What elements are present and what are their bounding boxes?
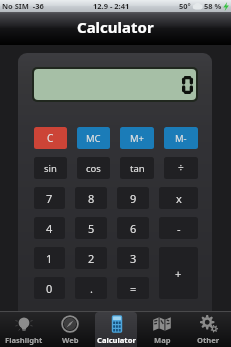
staticText: 12.9 - 2:41	[93, 1, 130, 11]
staticText: 1	[46, 251, 53, 266]
button[interactable]: 7	[34, 187, 65, 209]
staticText: Calculator	[97, 335, 136, 345]
staticText: M+	[130, 132, 145, 145]
staticText: 58 %	[204, 1, 222, 11]
button[interactable]: Calculator	[93, 312, 139, 347]
staticText: 3	[130, 251, 137, 266]
button[interactable]: 3	[117, 247, 149, 269]
staticText: 2	[88, 251, 95, 266]
button[interactable]: sin	[34, 157, 67, 179]
staticText: cos	[86, 162, 101, 175]
staticText: 4	[46, 221, 53, 236]
button[interactable]: tan	[120, 157, 154, 179]
staticText: No SIM -36	[2, 1, 44, 11]
staticText: =	[130, 281, 137, 296]
button[interactable]: M+	[120, 127, 154, 149]
button[interactable]: .	[75, 277, 107, 299]
button[interactable]: MC	[77, 127, 110, 149]
staticText: C	[47, 131, 54, 145]
staticText: 6	[130, 221, 137, 236]
staticText: 5	[88, 221, 95, 236]
button[interactable]: 1	[34, 247, 65, 269]
button[interactable]: cos	[77, 157, 110, 179]
button[interactable]: Web	[47, 312, 93, 347]
staticText: 9	[130, 191, 137, 206]
button[interactable]: +	[159, 247, 198, 299]
button[interactable]: M-	[164, 127, 198, 149]
button[interactable]: x	[159, 187, 198, 209]
button[interactable]: =	[117, 277, 149, 299]
button[interactable]: -	[159, 217, 198, 239]
staticText: Flashlight	[5, 335, 43, 345]
staticText: 50°	[179, 1, 191, 11]
button[interactable]: 8	[75, 187, 107, 209]
staticText: +	[175, 266, 182, 281]
button[interactable]: 6	[117, 217, 149, 239]
staticText: M-	[175, 132, 187, 145]
button[interactable]: ÷	[164, 157, 198, 179]
staticText: Map	[154, 335, 171, 345]
button[interactable]: 5	[75, 217, 107, 239]
staticText: tan	[130, 162, 145, 175]
staticText: 0	[46, 281, 53, 296]
staticText: 8	[88, 191, 95, 206]
staticText: 7	[46, 191, 53, 206]
button[interactable]: 0	[34, 277, 65, 299]
button[interactable]: 9	[117, 187, 149, 209]
staticText: -	[177, 221, 181, 236]
staticText: sin	[44, 162, 57, 175]
staticText: .	[90, 281, 93, 296]
button[interactable]: Flashlight	[0, 312, 47, 347]
button[interactable]: Other	[185, 312, 231, 347]
button[interactable]: C	[34, 127, 67, 149]
staticText: x	[176, 191, 182, 206]
staticText: Web	[62, 335, 79, 345]
staticText: Other	[197, 335, 220, 345]
button[interactable]: Map	[139, 312, 185, 347]
staticText: MC	[86, 132, 101, 145]
staticText: Calculator	[77, 17, 154, 37]
button[interactable]: 4	[34, 217, 65, 239]
staticText: ÷	[178, 161, 184, 175]
button[interactable]: 2	[75, 247, 107, 269]
